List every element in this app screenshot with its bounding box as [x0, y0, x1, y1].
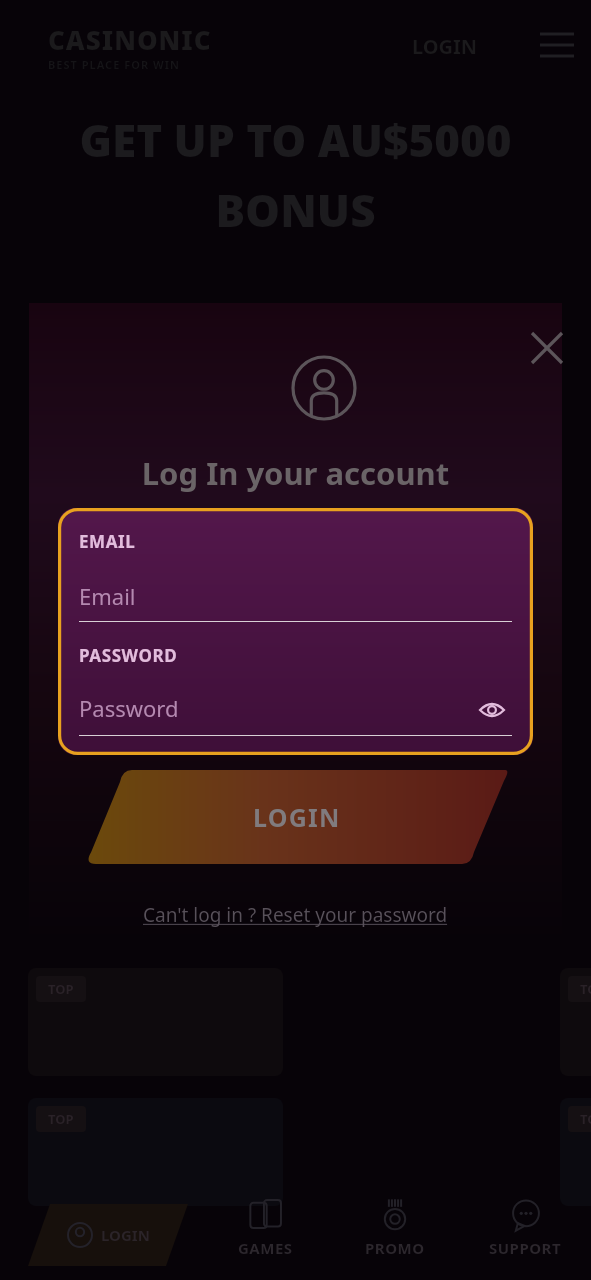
- staticText: SUPPORT: [489, 1238, 562, 1258]
- staticText: BONUS: [0, 180, 591, 240]
- staticText: BEST PLACE FOR WIN: [48, 57, 180, 72]
- staticText: PASSWORD: [79, 644, 178, 667]
- button[interactable]: Can't log in ? Reset your password: [135, 898, 456, 932]
- button[interactable]: GAMES: [200, 1198, 330, 1270]
- button[interactable]: LOGIN: [84, 770, 510, 864]
- staticText: LOGIN: [101, 1225, 150, 1245]
- staticText: LOGIN: [253, 800, 341, 834]
- button[interactable]: LOGIN: [28, 1204, 188, 1266]
- button[interactable]: Menu: [532, 20, 582, 70]
- button[interactable]: TOP: [560, 1098, 591, 1206]
- button[interactable]: LOGIN: [400, 24, 490, 68]
- staticText: TOP: [48, 1110, 74, 1128]
- staticText: TOP: [580, 980, 591, 998]
- button[interactable]: TOP: [28, 1098, 283, 1206]
- staticText: TOP: [580, 1110, 591, 1128]
- staticText: Log In your account: [29, 452, 562, 494]
- staticText: CASINONIC: [48, 22, 212, 57]
- staticText: Password: [79, 693, 179, 723]
- staticText: PROMO: [365, 1238, 425, 1258]
- button[interactable]: Password: [79, 693, 512, 723]
- staticText: EMAIL: [79, 530, 136, 553]
- staticText: GET UP TO AU$5000: [0, 110, 591, 170]
- staticText: Email: [79, 581, 136, 611]
- staticText: GAMES: [238, 1238, 293, 1258]
- button[interactable]: Email: [79, 579, 512, 613]
- staticText: TOP: [48, 980, 74, 998]
- button[interactable]: SUPPORT: [460, 1198, 590, 1270]
- staticText: Can't log in ? Reset your password: [143, 902, 448, 928]
- button[interactable]: Show password: [472, 693, 512, 727]
- button[interactable]: Close: [521, 322, 573, 374]
- staticText: LOGIN: [412, 33, 478, 60]
- button[interactable]: TOP: [560, 968, 591, 1076]
- button[interactable]: PROMO: [330, 1198, 460, 1270]
